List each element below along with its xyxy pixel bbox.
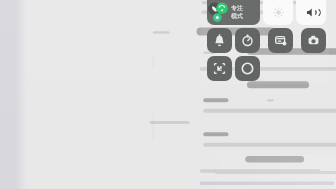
button[interactable]: Screenshot	[235, 56, 260, 81]
button[interactable]: Silent mode	[207, 28, 232, 53]
button[interactable]: Brightness	[263, 0, 293, 25]
button[interactable]: Camera	[301, 28, 326, 53]
button[interactable]: Scan code	[207, 56, 232, 81]
button[interactable]: Connectivity and focus mode	[207, 0, 260, 25]
staticText: 模式	[231, 12, 243, 20]
button[interactable]: Screen recorder	[268, 28, 293, 53]
staticText: 专注	[231, 4, 243, 12]
button[interactable]: Timer	[235, 28, 260, 53]
button[interactable]: Volume	[296, 0, 326, 25]
